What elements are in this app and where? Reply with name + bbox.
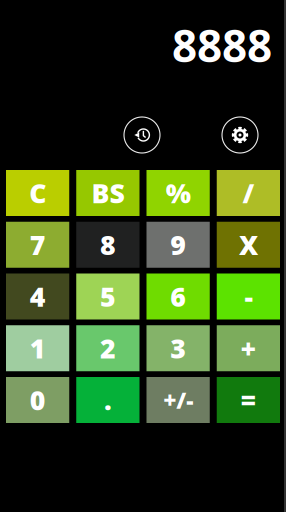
button[interactable]: 7: [6, 222, 69, 268]
staticText: /: [242, 175, 254, 211]
button[interactable]: 6: [146, 273, 210, 319]
staticText: 3: [170, 330, 186, 366]
staticText: 2: [100, 330, 116, 366]
button[interactable]: =: [217, 377, 280, 423]
staticText: +/-: [163, 385, 193, 415]
button[interactable]: 5: [76, 273, 139, 319]
staticText: 5: [100, 279, 116, 314]
button[interactable]: 0: [6, 377, 69, 423]
button[interactable]: 4: [6, 273, 69, 319]
staticText: 0: [30, 382, 46, 418]
staticText: BS: [91, 175, 124, 211]
staticText: %: [166, 175, 191, 211]
button[interactable]: 1: [6, 325, 69, 371]
staticText: .: [104, 382, 112, 418]
button[interactable]: %: [146, 170, 210, 216]
button[interactable]: History: [122, 115, 162, 155]
staticText: 9: [170, 227, 186, 262]
button[interactable]: +: [217, 325, 280, 371]
button[interactable]: 8: [76, 222, 139, 268]
button[interactable]: C: [6, 170, 69, 216]
staticText: 4: [30, 279, 46, 314]
staticText: 1: [30, 330, 46, 366]
button[interactable]: BS: [76, 170, 139, 216]
button[interactable]: 2: [76, 325, 139, 371]
button[interactable]: +/-: [146, 377, 210, 423]
staticText: 6: [170, 279, 186, 314]
button[interactable]: 3: [146, 325, 210, 371]
button[interactable]: .: [76, 377, 139, 423]
staticText: X: [239, 227, 258, 262]
staticText: 8: [100, 227, 116, 262]
button[interactable]: -: [217, 273, 280, 319]
staticText: -: [244, 279, 252, 314]
button[interactable]: 9: [146, 222, 210, 268]
staticText: 7: [30, 227, 46, 262]
staticText: 8888: [172, 16, 272, 74]
staticText: C: [29, 175, 46, 211]
staticText: =: [240, 382, 256, 418]
button[interactable]: /: [217, 170, 280, 216]
button[interactable]: X: [217, 222, 280, 268]
button[interactable]: Settings: [220, 115, 260, 155]
staticText: +: [240, 330, 256, 366]
